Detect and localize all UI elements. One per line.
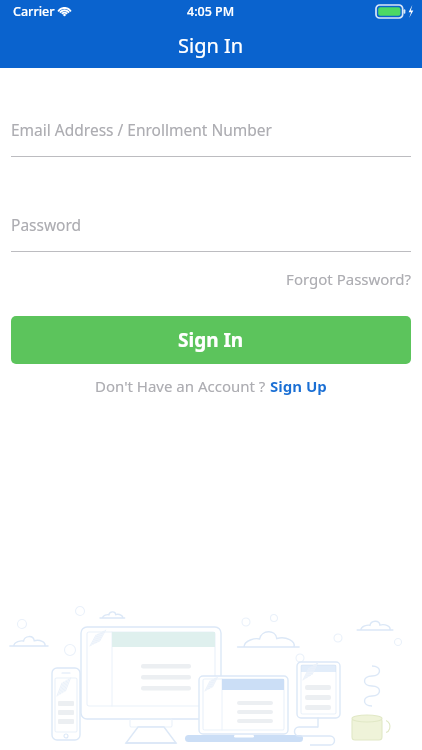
button[interactable]: Password [0,214,422,252]
button[interactable]: Sign In [11,316,411,364]
staticText: Sign Up [270,376,327,396]
staticText: 4:05 PM [187,3,235,20]
staticText: Sign In [178,32,244,59]
staticText: Forgot Password? [11,269,411,289]
button[interactable]: Email Address / Enrollment Number [0,119,422,157]
button[interactable]: Forgot Password? [0,266,422,292]
staticText: Carrier [13,3,55,20]
staticText: Password [11,214,82,235]
staticText: Don't Have an Account ? [95,376,270,396]
button[interactable]: Sign Up [270,376,327,396]
staticText: Email Address / Enrollment Number [11,119,272,140]
other: Battery charging [375,5,415,18]
other: Wi-Fi signal [57,5,72,16]
staticText: Sign In [178,327,244,353]
